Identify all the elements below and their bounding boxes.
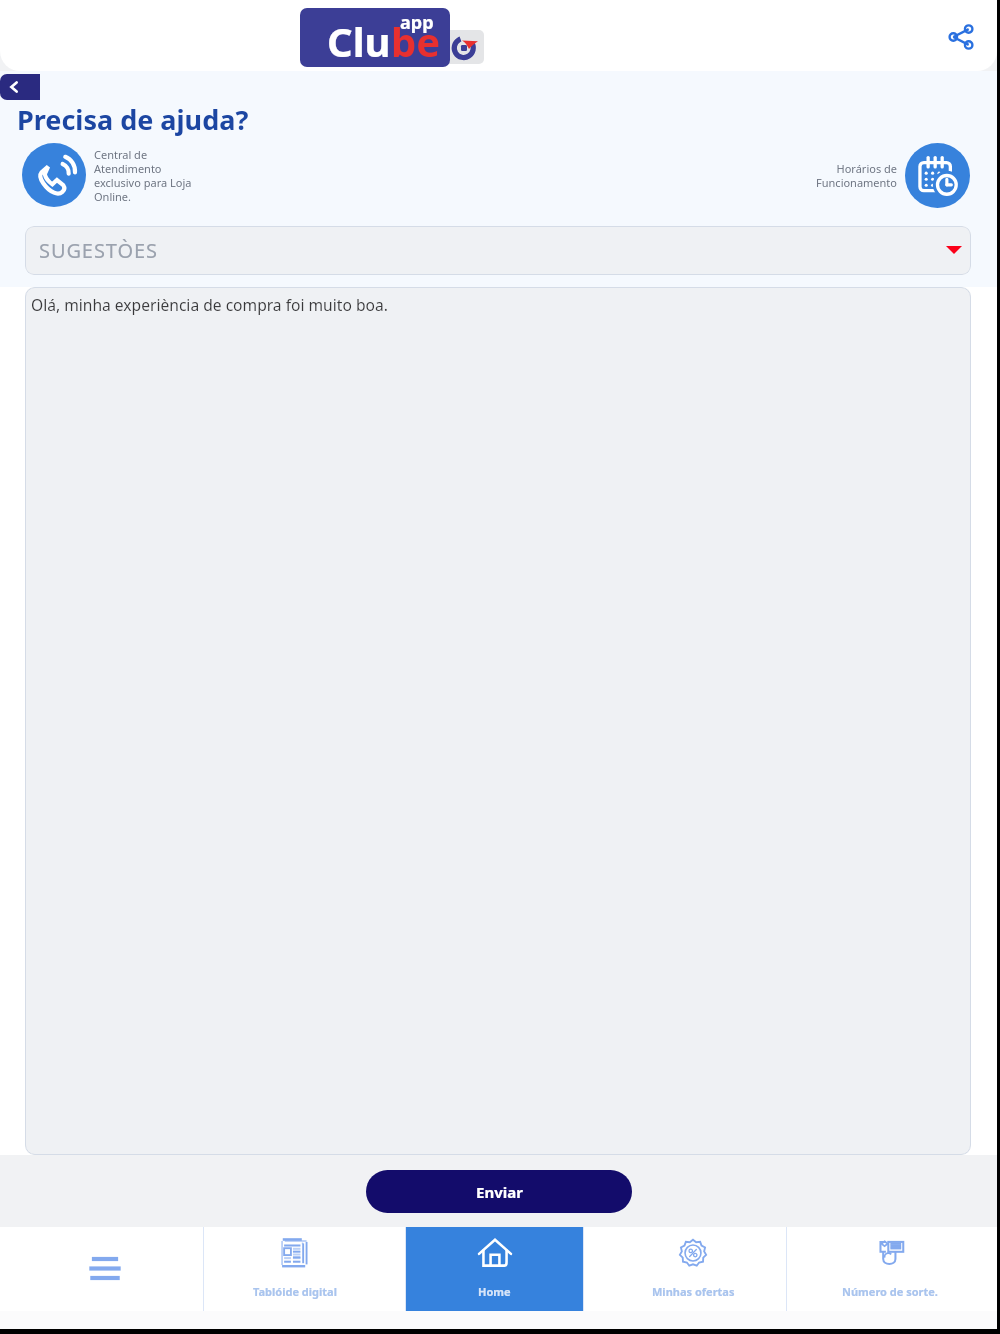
staticText: Número de sorte. <box>842 1284 938 1299</box>
button[interactable]: Share <box>939 15 983 59</box>
button[interactable]: Enviar <box>366 1170 632 1213</box>
button[interactable]: Menu <box>7 1227 203 1311</box>
staticText: Central de Atendimento exclusivo para Lo… <box>94 147 192 204</box>
button[interactable]: Back <box>0 74 40 100</box>
staticText: Clu <box>327 14 391 67</box>
button[interactable]: Minhas ofertas <box>584 1227 786 1311</box>
button[interactable]: Olá, minha experiència de compra foi mui… <box>25 287 971 1155</box>
staticText: Horários de Funcionamento <box>816 161 897 190</box>
button[interactable]: Tablóide digital <box>204 1227 405 1311</box>
staticText: SUGESTÒES <box>39 237 158 264</box>
staticText: app <box>400 10 434 35</box>
staticText: Enviar <box>476 1182 523 1202</box>
staticText: Precisa de ajuda? <box>17 101 249 138</box>
staticText: Olá, minha experiència de compra foi mui… <box>31 294 388 315</box>
staticText: Minhas ofertas <box>652 1284 735 1299</box>
button[interactable]: Número de sorte. <box>787 1227 987 1311</box>
staticText: be <box>391 14 441 67</box>
staticText: Tablóide digital <box>253 1284 337 1299</box>
button[interactable]: Horários de Funcionamento <box>816 143 970 208</box>
staticText: Home <box>478 1284 511 1299</box>
button[interactable]: Clu <box>300 8 450 67</box>
button[interactable]: SUGESTÒES <box>25 226 971 275</box>
button[interactable]: Central de Atendimento exclusivo para Lo… <box>22 143 192 207</box>
button[interactable]: Home <box>406 1227 583 1311</box>
